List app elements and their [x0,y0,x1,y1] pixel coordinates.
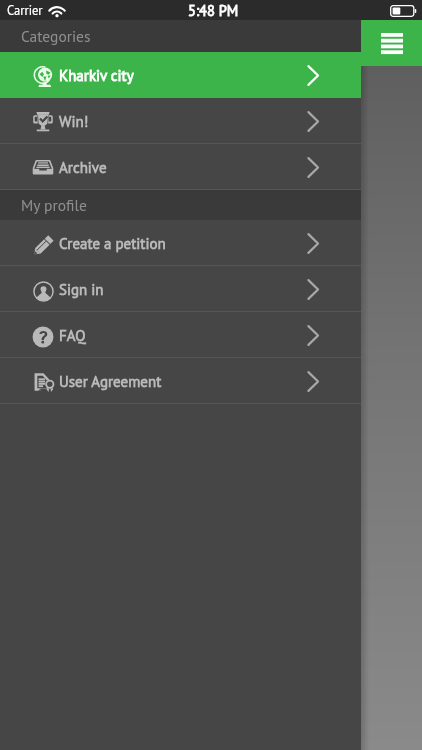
staticText: My profile [21,195,87,215]
button[interactable]: Archive [0,144,361,190]
staticText: User Agreement [59,372,162,391]
staticText: Categories [21,26,91,46]
button[interactable]: Win! [0,98,361,144]
button[interactable]: Open navigation menu [361,20,422,66]
staticText: Win! [59,112,89,131]
staticText: Carrier [7,2,43,18]
staticText: Create a petition [59,234,166,253]
button[interactable]: User Agreement [0,358,361,404]
staticText: Kharkiv city [59,66,134,85]
button[interactable]: Sign in [0,266,361,312]
button[interactable]: Create a petition [0,220,361,266]
staticText: Archive [59,158,107,177]
button[interactable]: FAQ [0,312,361,358]
button[interactable]: Kharkiv city [0,52,361,98]
staticText: 5:48 PM [188,1,239,20]
staticText: FAQ [59,326,86,345]
staticText: Sign in [59,280,104,299]
